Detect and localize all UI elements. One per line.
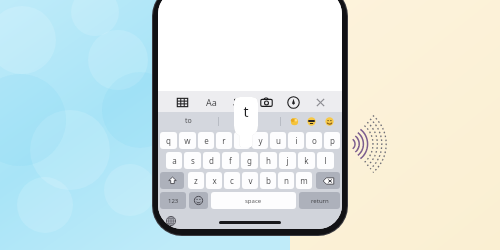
staticText: to (185, 116, 192, 126)
staticText: x (212, 175, 217, 186)
button[interactable]: Shift (160, 172, 184, 189)
button[interactable]: space (211, 192, 296, 209)
button[interactable]: r (216, 132, 232, 149)
staticText: n (284, 175, 289, 186)
staticText: m (300, 175, 308, 186)
button[interactable]: Markup (283, 93, 303, 111)
button[interactable]: Switch keyboard language (164, 214, 178, 228)
staticText: p (330, 135, 335, 146)
staticText: g (247, 155, 252, 166)
button[interactable]: n (278, 172, 294, 189)
button[interactable]: Camera (256, 93, 276, 111)
staticText: z (194, 175, 198, 186)
staticText: d (209, 155, 214, 166)
button[interactable]: t (234, 132, 250, 149)
button[interactable]: t (219, 112, 280, 130)
button[interactable]: p (324, 132, 340, 149)
button[interactable]: v (242, 172, 258, 189)
staticText: b (266, 175, 271, 186)
button[interactable]: y (252, 132, 268, 149)
button[interactable]: b (260, 172, 276, 189)
button[interactable]: return (299, 192, 340, 209)
button[interactable]: u (270, 132, 286, 149)
staticText: y (258, 135, 263, 146)
staticText: q (166, 135, 171, 146)
staticText: f (229, 155, 232, 166)
staticText: space (245, 197, 262, 205)
button[interactable]: x (206, 172, 222, 189)
button[interactable]: l (317, 152, 334, 169)
staticText: o (312, 135, 317, 146)
button[interactable]: o (306, 132, 322, 149)
staticText: e (204, 135, 209, 146)
staticText: h (266, 155, 271, 166)
staticText: j (286, 155, 289, 166)
button[interactable]: to (158, 112, 218, 130)
button[interactable]: Emoji (189, 192, 208, 209)
button[interactable]: i (288, 132, 304, 149)
staticText: k (304, 155, 309, 166)
staticText: return (311, 197, 329, 205)
staticText: s (191, 155, 195, 166)
button[interactable]: Aa (200, 93, 222, 111)
button[interactable]: Table (172, 93, 192, 111)
button[interactable]: w (179, 132, 196, 149)
button[interactable]: j (279, 152, 296, 169)
button[interactable]: Backspace (316, 172, 340, 189)
staticText: a (172, 155, 177, 166)
staticText: u (276, 135, 281, 146)
button[interactable]: a (166, 152, 182, 169)
staticText: t (243, 102, 249, 121)
button[interactable]: k (298, 152, 315, 169)
button[interactable]: Close (310, 93, 330, 111)
button[interactable]: c (224, 172, 240, 189)
button[interactable]: h (260, 152, 277, 169)
staticText: v (248, 175, 253, 186)
staticText: r (222, 135, 226, 146)
button[interactable]: f (222, 152, 239, 169)
button[interactable]: q (160, 132, 177, 149)
staticText: w (184, 135, 191, 146)
button[interactable]: s (184, 152, 201, 169)
staticText: i (295, 135, 298, 146)
staticText: Aa (206, 96, 217, 108)
staticText: c (230, 175, 234, 186)
staticText: l (324, 155, 327, 166)
button[interactable] (281, 112, 342, 130)
button[interactable]: d (203, 152, 220, 169)
staticText: t (248, 116, 251, 126)
staticText: 123 (168, 197, 179, 205)
button[interactable]: Format list (229, 93, 249, 111)
button[interactable]: z (188, 172, 204, 189)
button[interactable]: g (241, 152, 258, 169)
button[interactable]: 123 (160, 192, 186, 209)
button[interactable]: e (198, 132, 214, 149)
button[interactable]: m (296, 172, 312, 189)
